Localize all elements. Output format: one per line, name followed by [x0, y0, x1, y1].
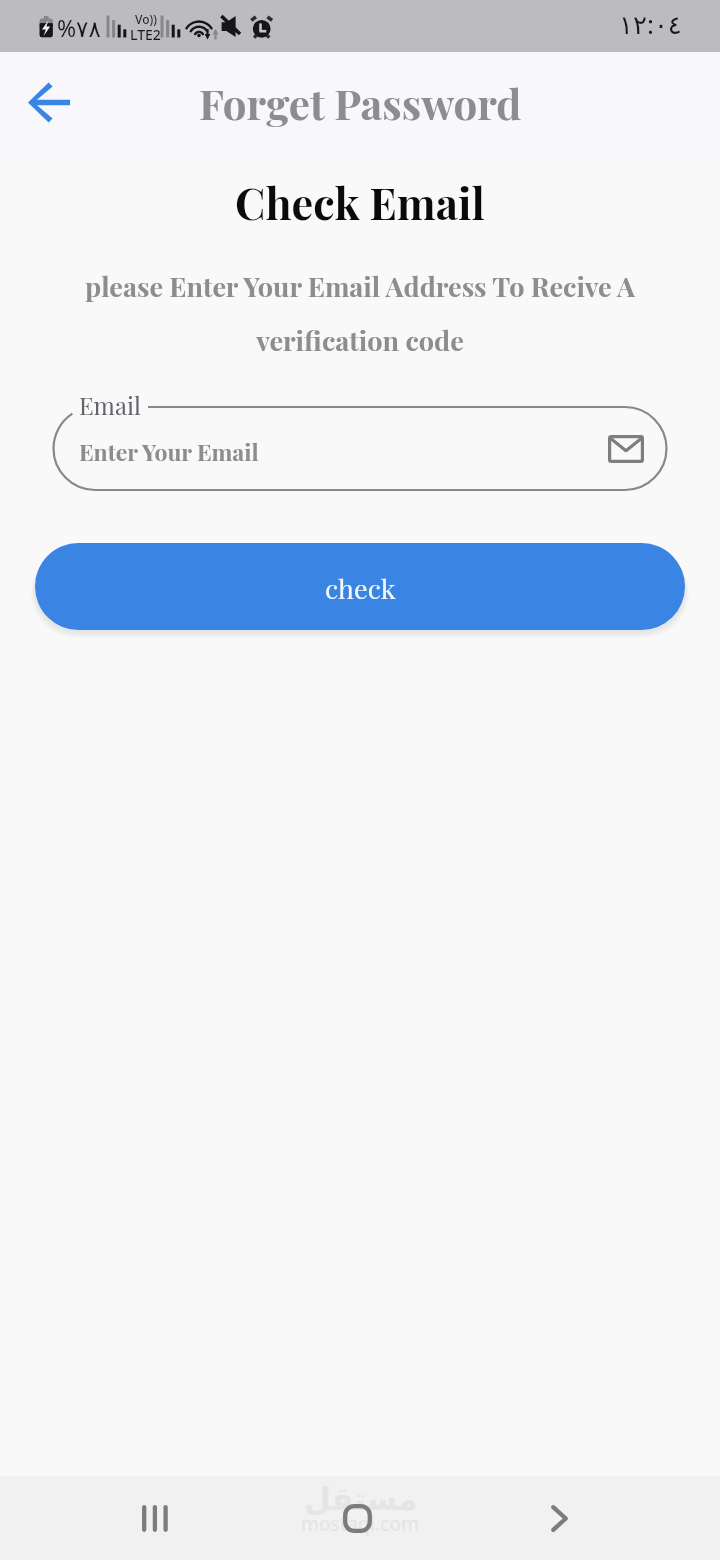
button[interactable]: Home [316, 1484, 398, 1552]
staticText: Enter Your Email [79, 436, 259, 467]
staticText: مستقل [304, 1481, 418, 1517]
staticText: %٧٨ [57, 12, 101, 43]
staticText: please Enter Your Email Address To Reciv… [72, 268, 648, 358]
staticText: mostaql.com [301, 1511, 419, 1537]
staticText: Vo)) [135, 11, 157, 27]
staticText: Forget Password [199, 75, 522, 131]
button[interactable]: check [35, 543, 685, 630]
staticText: check [325, 570, 396, 606]
button[interactable]: Recent apps [114, 1484, 196, 1552]
staticText: ١٢:٠٤ [619, 6, 682, 41]
button[interactable]: Back [518, 1484, 600, 1552]
staticText: Check Email [0, 173, 720, 230]
staticText: LTE2 [130, 25, 161, 44]
staticText: Email [79, 389, 141, 421]
button[interactable]: Email [602, 425, 650, 473]
button[interactable]: Back [8, 61, 90, 143]
